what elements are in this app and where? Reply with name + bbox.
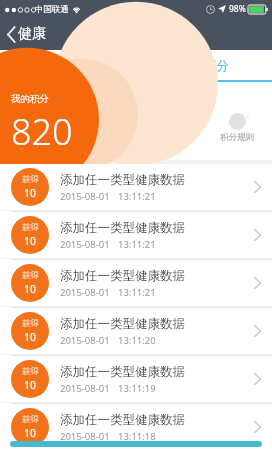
staticText: 添加任一类型健康数据	[60, 412, 185, 428]
staticText: 2015-08-01	[60, 190, 110, 203]
staticText: 10	[24, 378, 37, 392]
staticText: 添加任一类型健康数据	[60, 268, 185, 284]
staticText: 820	[11, 107, 73, 156]
staticText: 13:11:21	[118, 190, 156, 203]
staticText: 13:11:20	[118, 334, 156, 347]
button[interactable]: 获得	[0, 356, 272, 402]
staticText: 2015-08-01	[60, 286, 110, 299]
button[interactable]: 商品兑换	[0, 50, 136, 82]
staticText: 获得	[22, 414, 39, 425]
staticText: 2015-08-01	[60, 238, 110, 251]
staticText: 添加任一类型健康数据	[60, 220, 185, 236]
staticText: 添加任一类型健康数据	[60, 316, 185, 332]
button[interactable]: 我的积分	[136, 50, 272, 82]
staticText: 10	[24, 426, 37, 440]
staticText: 获得	[22, 174, 39, 185]
staticText: 商品兑换	[43, 58, 93, 74]
staticText: 2015-08-01	[60, 334, 110, 347]
staticText: 获得	[22, 222, 39, 233]
staticText: 我的积分	[179, 58, 229, 74]
staticText: 获得	[22, 366, 39, 377]
staticText: 13:11:21	[118, 238, 156, 251]
staticText: 13:11:19	[118, 382, 156, 395]
staticText: 10	[24, 330, 37, 344]
staticText: 2015-08-01	[60, 382, 110, 395]
other: Open detail	[254, 181, 261, 193]
staticText: 健康	[18, 25, 46, 43]
other: Open detail	[254, 373, 261, 385]
staticText: 我的积分	[11, 93, 49, 105]
other: Open detail	[254, 421, 261, 433]
other: Open detail	[254, 325, 261, 337]
staticText: 10	[24, 186, 37, 200]
staticText: 添加任一类型健康数据	[60, 364, 185, 380]
staticText: 13:11:21	[118, 286, 156, 299]
staticText: 98%	[229, 3, 246, 15]
staticText: 10	[24, 282, 37, 296]
button[interactable]: 积分规则	[216, 109, 258, 147]
other: Open detail	[254, 229, 261, 241]
button[interactable]: 获得	[0, 260, 272, 306]
staticText: 获得	[22, 318, 39, 329]
staticText: 下午1:17	[118, 3, 154, 15]
staticText: 10	[24, 234, 37, 248]
staticText: 中国联通	[35, 4, 69, 15]
staticText: 获得	[22, 270, 39, 281]
other: Open detail	[254, 277, 261, 289]
button[interactable]: 获得	[0, 164, 272, 210]
staticText: 添加任一类型健康数据	[60, 172, 185, 188]
staticText: 2015-08-01	[60, 430, 110, 443]
staticText: 积分规则	[220, 132, 254, 143]
button[interactable]: Back	[0, 21, 54, 47]
button[interactable]: 获得	[0, 404, 272, 450]
button[interactable]: 获得	[0, 212, 272, 258]
staticText: 13:11:18	[118, 430, 156, 443]
button[interactable]: 获得	[0, 308, 272, 354]
